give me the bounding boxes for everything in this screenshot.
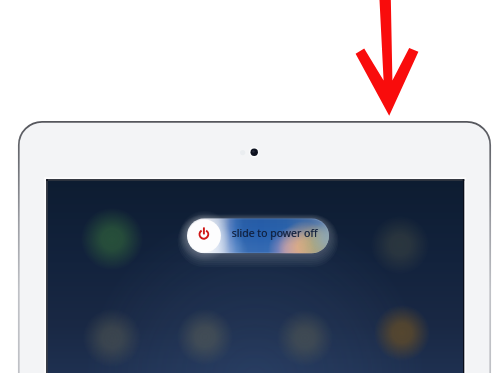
button[interactable]: Slide to power off iPad (0, 0, 500, 373)
